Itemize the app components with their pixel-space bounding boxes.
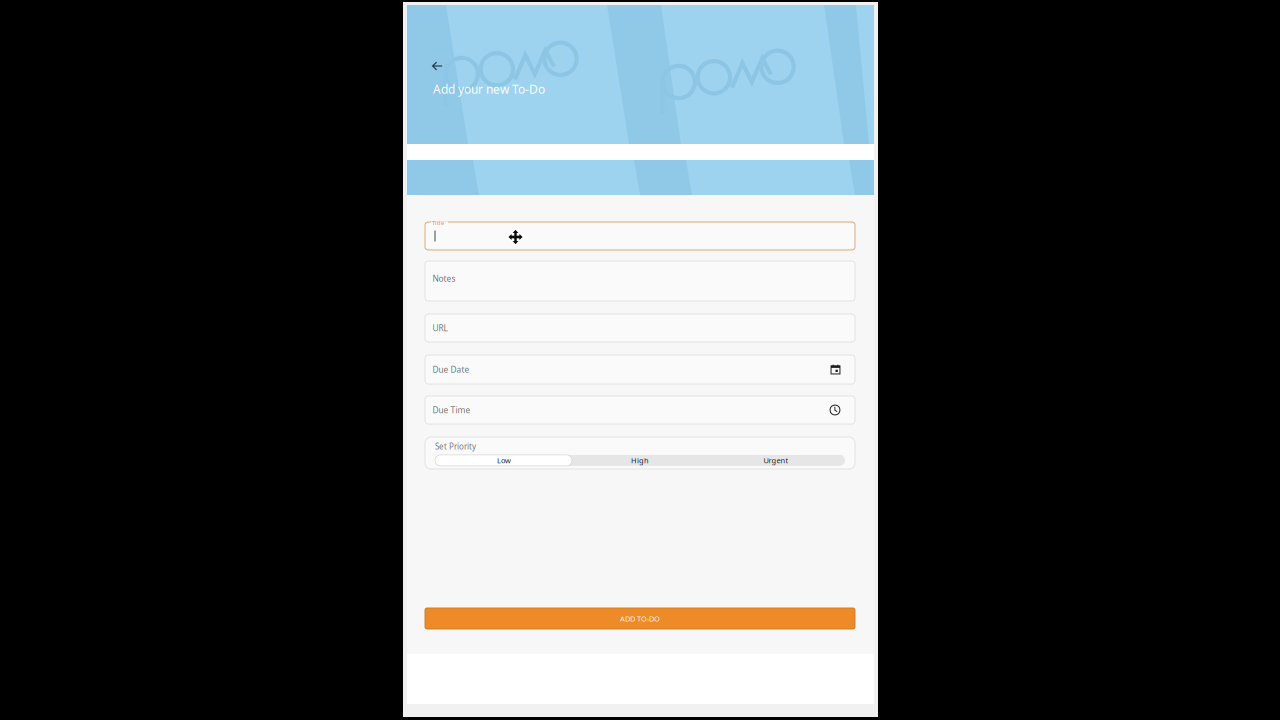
button[interactable]: ADD TO-DO xyxy=(425,608,855,629)
button[interactable]: Due Time xyxy=(425,396,855,424)
button[interactable]: Notes xyxy=(425,261,855,301)
staticText: High xyxy=(631,455,649,465)
staticText: Urgent xyxy=(763,455,788,465)
button[interactable]: Low xyxy=(436,455,572,466)
staticText: Notes xyxy=(432,273,455,284)
button[interactable]: Title xyxy=(425,222,855,250)
staticText: Low xyxy=(497,455,511,465)
button[interactable]: Due Date xyxy=(425,355,855,384)
staticText: Due Date xyxy=(432,364,469,375)
staticText: URL xyxy=(432,322,447,334)
button[interactable]: Urgent xyxy=(708,455,844,466)
button[interactable]: Back xyxy=(431,55,455,77)
button[interactable]: URL xyxy=(425,314,855,342)
button[interactable]: High xyxy=(572,455,708,466)
staticText: ADD TO-DO xyxy=(620,613,660,624)
staticText: Due Time xyxy=(432,404,470,416)
staticText: Set Priority xyxy=(435,441,476,452)
staticText: Add your new To-Do xyxy=(433,81,545,97)
staticText: Title xyxy=(432,218,444,227)
